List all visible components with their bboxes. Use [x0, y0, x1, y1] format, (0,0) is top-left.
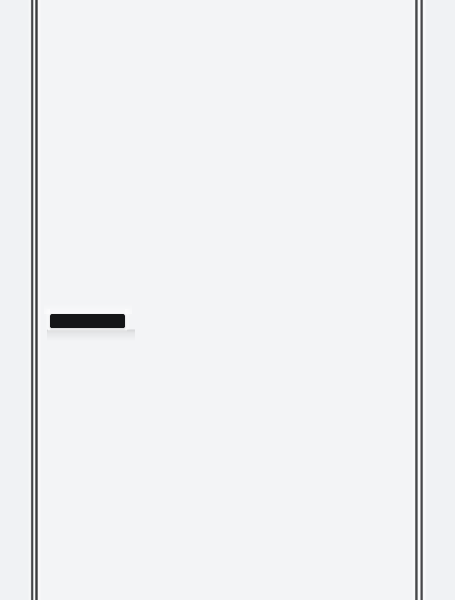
button[interactable]: Action: [50, 314, 125, 328]
